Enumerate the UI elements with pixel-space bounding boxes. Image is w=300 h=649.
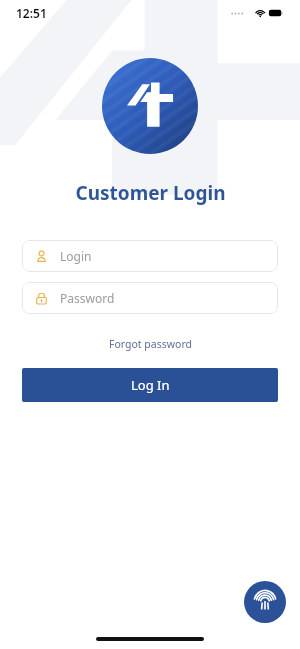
button[interactable]: Log In — [22, 368, 278, 402]
button[interactable]: Login — [22, 240, 278, 272]
button[interactable]: Password — [22, 282, 278, 314]
button[interactable]: Forgot password — [101, 334, 200, 354]
staticText: 12:51 — [16, 5, 47, 21]
staticText: Password — [60, 290, 115, 306]
button[interactable]: Fingerprint login — [244, 581, 286, 623]
staticText: Customer Login — [75, 180, 226, 206]
staticText: Forgot password — [109, 337, 192, 351]
staticText: Log In — [131, 376, 170, 394]
staticText: Login — [60, 248, 92, 264]
